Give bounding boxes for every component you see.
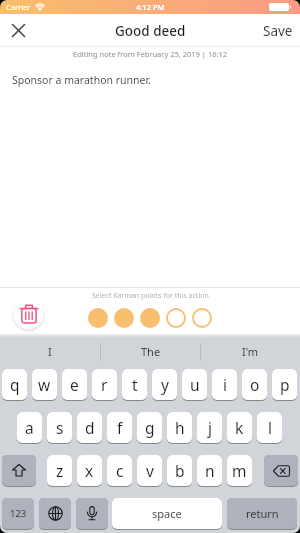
button[interactable] [6,18,30,42]
button[interactable]: i [212,369,237,400]
button[interactable]: h [167,412,192,443]
button[interactable] [39,498,71,529]
staticText: d [85,417,95,438]
button[interactable]: space [112,498,222,529]
button[interactable]: a [17,412,42,443]
staticText: w [38,374,51,395]
button[interactable]: I [0,334,100,369]
button[interactable]: r [92,369,117,400]
staticText: c [116,460,124,481]
button[interactable]: e [62,369,87,400]
staticText: return [246,506,279,521]
button[interactable]: 123 [2,498,34,529]
staticText: p [280,374,290,395]
button[interactable]: p [272,369,297,400]
button[interactable] [192,308,212,328]
button[interactable]: o [242,369,267,400]
staticText: Good deed [115,22,186,40]
button[interactable] [88,308,108,328]
button[interactable]: q [2,369,27,400]
button[interactable]: y [152,369,177,400]
button[interactable]: f [107,412,132,443]
button[interactable]: The [101,334,200,369]
staticText: Sponsor a marathon runner. [12,73,151,87]
staticText: Save [263,22,293,40]
staticText: n [205,460,215,481]
staticText: o [250,374,260,395]
button[interactable]: t [122,369,147,400]
button[interactable]: u [182,369,207,400]
button[interactable]: k [227,412,252,443]
staticText: h [175,417,185,438]
staticText: Editing note from February 25, 2019 | 16… [73,49,228,59]
button[interactable]: x [77,455,102,486]
staticText: t [132,374,138,395]
button[interactable]: n [197,455,222,486]
staticText: 123 [10,507,27,520]
button[interactable]: return [227,498,297,529]
staticText: I'm [242,344,259,359]
button[interactable]: b [167,455,192,486]
staticText: Select Karman points for this action [92,291,209,301]
button[interactable]: z [47,455,72,486]
staticText: r [101,374,108,395]
button[interactable] [166,308,186,328]
staticText: 4:12 PM [136,2,165,12]
staticText: u [190,374,200,395]
button[interactable] [114,308,134,328]
staticText: q [10,374,20,395]
staticText: j [208,417,212,438]
button[interactable]: d [77,412,102,443]
button[interactable]: Save [263,21,293,39]
staticText: The [141,344,161,359]
button[interactable]: s [47,412,72,443]
button[interactable]: w [32,369,57,400]
button[interactable]: I'm [201,334,300,369]
button[interactable]: j [197,412,222,443]
staticText: y [161,374,169,395]
button[interactable]: m [227,455,252,486]
staticText: g [145,417,155,438]
staticText: z [56,460,64,481]
staticText: a [25,417,34,438]
staticText: Carrier [6,2,31,12]
staticText: k [235,417,244,438]
button[interactable] [264,455,298,486]
button[interactable] [140,308,160,328]
staticText: l [268,417,272,438]
staticText: s [56,417,64,438]
button[interactable] [2,455,36,486]
button[interactable]: c [107,455,132,486]
staticText: f [117,417,123,438]
button[interactable]: v [137,455,162,486]
button[interactable] [76,498,108,529]
staticText: x [85,460,94,481]
staticText: space [152,506,182,521]
staticText: e [70,374,79,395]
button[interactable]: g [137,412,162,443]
staticText: v [146,460,154,481]
staticText: m [232,460,247,481]
staticText: I [48,344,52,359]
staticText: b [175,460,185,481]
button[interactable] [13,298,44,329]
staticText: i [223,374,227,395]
button[interactable]: l [257,412,282,443]
